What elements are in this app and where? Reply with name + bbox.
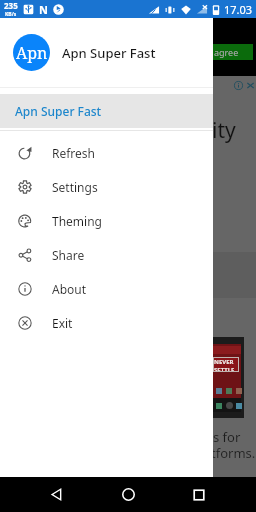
button[interactable]: Theming: [0, 204, 213, 238]
staticText: Share: [52, 247, 85, 263]
button[interactable]: Settings: [0, 170, 213, 204]
staticText: s for: [213, 428, 241, 446]
button[interactable]: Apn Super Fast: [0, 94, 213, 128]
staticText: SETTLE: [214, 366, 235, 371]
staticText: About: [52, 281, 87, 297]
button[interactable]: Share: [0, 238, 213, 272]
staticText: Apn Super Fast: [62, 44, 156, 62]
staticText: Settings: [52, 179, 98, 195]
staticText: Exit: [52, 315, 73, 331]
staticText: KB/s: [5, 11, 17, 18]
staticText: Refresh: [52, 145, 96, 161]
staticText: Theming: [52, 213, 102, 229]
staticText: Apn: [16, 42, 48, 64]
staticText: tforms.: [211, 444, 256, 462]
staticText: 17.03: [224, 2, 253, 17]
staticText: ity: [212, 116, 236, 145]
staticText: agree: [214, 46, 239, 58]
staticText: NEVER: [214, 358, 234, 366]
button[interactable]: Exit: [0, 306, 213, 340]
button[interactable]: About: [0, 272, 213, 306]
staticText: 235: [4, 0, 18, 11]
button[interactable]: Back: [32, 477, 80, 512]
staticText: Apn Super Fast: [15, 103, 102, 119]
button[interactable]: Recent apps: [175, 477, 223, 512]
button[interactable]: Home: [104, 477, 152, 512]
button[interactable]: Refresh: [0, 136, 213, 170]
staticText: N: [39, 2, 48, 17]
